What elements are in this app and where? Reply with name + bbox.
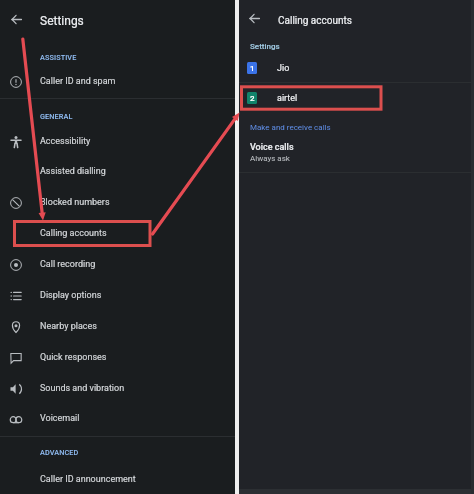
staticText: Voicemail — [40, 413, 80, 424]
staticText: Caller ID and spam — [40, 76, 116, 87]
button[interactable]: Call recording — [0, 249, 235, 280]
staticText: Display options — [40, 290, 102, 301]
staticText: 2 — [250, 94, 255, 103]
button[interactable]: Quick responses — [0, 342, 235, 373]
staticText: Calling accounts — [278, 15, 352, 27]
button[interactable]: 1 — [239, 55, 474, 81]
button[interactable]: Blocked numbers — [0, 187, 235, 218]
staticText: Voice calls — [250, 142, 294, 153]
staticText: Nearby places — [40, 321, 97, 332]
staticText: 1 — [250, 64, 255, 73]
staticText: Assisted dialling — [40, 166, 106, 177]
button[interactable]: Nearby places — [0, 311, 235, 342]
staticText: Always ask — [250, 154, 290, 163]
button[interactable]: Voicemail — [0, 403, 235, 434]
staticText: Call recording — [40, 259, 96, 270]
staticText: ADVANCED — [40, 448, 79, 457]
staticText: Blocked numbers — [40, 197, 110, 208]
staticText: Settings — [250, 42, 280, 51]
staticText: GENERAL — [40, 112, 73, 121]
button[interactable]: Accessibility — [0, 126, 235, 157]
staticText: Accessibility — [40, 136, 91, 147]
button[interactable]: Voice calls — [239, 137, 474, 167]
staticText: Sounds and vibration — [40, 383, 125, 394]
button[interactable]: Caller ID announcement — [0, 464, 235, 494]
button[interactable]: Calling accounts — [0, 218, 235, 249]
staticText: Quick responses — [40, 352, 107, 363]
button[interactable]: 2 — [239, 85, 474, 111]
button[interactable]: Back — [2, 5, 30, 33]
staticText: Jio — [277, 63, 290, 74]
button[interactable]: Caller ID and spam — [0, 66, 235, 97]
staticText: Make and receive calls — [250, 123, 331, 132]
button[interactable]: Sounds and vibration — [0, 373, 235, 404]
staticText: Settings — [40, 14, 84, 28]
staticText: airtel — [277, 93, 298, 104]
staticText: Caller ID announcement — [40, 474, 136, 485]
button[interactable]: Back — [240, 4, 268, 32]
button[interactable]: Assisted dialling — [0, 156, 235, 187]
staticText: ASSISTIVE — [40, 53, 77, 62]
button[interactable]: Display options — [0, 280, 235, 311]
staticText: Calling accounts — [40, 228, 107, 239]
